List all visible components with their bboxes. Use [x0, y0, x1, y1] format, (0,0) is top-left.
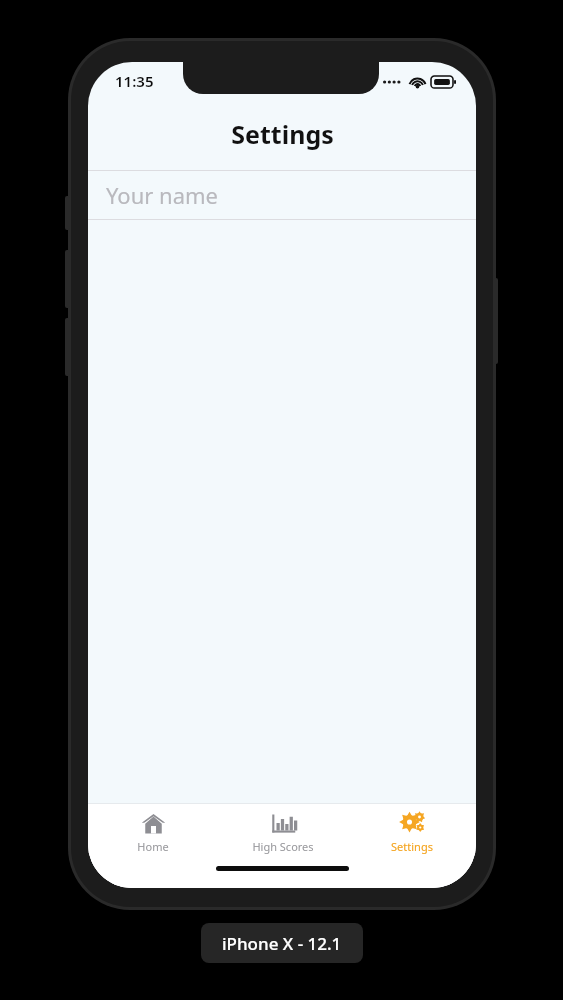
staticText: iPhone X - 12.1 — [222, 932, 342, 955]
staticText: High Scores — [252, 839, 314, 854]
staticText: Settings — [391, 839, 433, 854]
staticText: Your name — [106, 180, 218, 210]
button[interactable]: High Scores — [218, 804, 347, 860]
button[interactable]: Settings — [347, 804, 476, 860]
staticText: Home — [137, 839, 169, 854]
staticText: 11:35 — [115, 71, 154, 91]
button[interactable]: Home — [88, 804, 218, 860]
button[interactable]: Your name — [88, 171, 476, 219]
staticText: Settings — [231, 117, 334, 151]
